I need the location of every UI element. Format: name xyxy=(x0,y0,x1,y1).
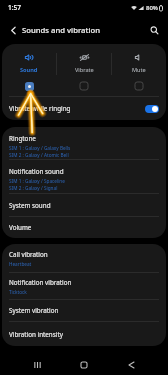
button[interactable]: Mute xyxy=(112,44,166,96)
button[interactable]: Select Vibrate xyxy=(79,81,89,91)
staticText: SIM 2 : Galaxy / Signal xyxy=(9,185,58,191)
button[interactable]: Vibration intensity xyxy=(2,322,166,346)
staticText: Ringtone xyxy=(9,134,36,143)
staticText: Notification vibration xyxy=(9,278,72,287)
staticText: SIM 2 : Galaxy / Atomic Bell xyxy=(9,152,69,158)
button[interactable]: System sound xyxy=(2,194,166,216)
staticText: System sound xyxy=(9,201,51,210)
button[interactable]: Sound xyxy=(2,44,56,96)
staticText: Vibrate while ringing xyxy=(9,104,71,113)
button[interactable]: Volume xyxy=(2,217,166,238)
staticText: 1:57 xyxy=(8,3,21,12)
staticText: Sounds and vibration xyxy=(22,25,100,35)
staticText: 80% xyxy=(146,4,158,12)
button[interactable]: Notification vibration xyxy=(2,273,166,299)
button[interactable]: Back xyxy=(4,21,22,39)
button[interactable]: System vibration xyxy=(2,300,166,321)
staticText: Volume xyxy=(9,223,32,232)
button[interactable]: Search xyxy=(145,21,163,39)
staticText: Vibration intensity xyxy=(9,330,63,339)
staticText: Mute xyxy=(132,66,146,74)
button[interactable]: Select Sound xyxy=(24,81,34,91)
button[interactable]: Vibrate while ringing xyxy=(2,97,166,120)
staticText: Notification sound xyxy=(9,167,64,176)
staticText: SIM 1 : Galaxy / Galaxy Bells xyxy=(9,145,71,151)
button[interactable]: Vibrate xyxy=(57,44,111,96)
button[interactable]: Notification sound xyxy=(2,160,166,193)
staticText: SIM 1 : Galaxy / Spaceline xyxy=(9,178,65,184)
staticText: Vibrate xyxy=(75,66,94,74)
staticText: Sound xyxy=(20,66,38,74)
button[interactable]: Home xyxy=(71,355,97,375)
button[interactable]: Ringtone xyxy=(2,127,166,159)
staticText: Heartbeat xyxy=(9,261,32,267)
button[interactable]: Select Mute xyxy=(134,81,144,91)
button[interactable]: Back xyxy=(118,355,144,375)
staticText: Ticktock xyxy=(9,289,27,295)
button[interactable]: Call vibration xyxy=(2,244,166,272)
button[interactable]: Recents xyxy=(24,355,50,375)
staticText: System vibration xyxy=(9,306,59,315)
staticText: Call vibration xyxy=(9,250,48,259)
